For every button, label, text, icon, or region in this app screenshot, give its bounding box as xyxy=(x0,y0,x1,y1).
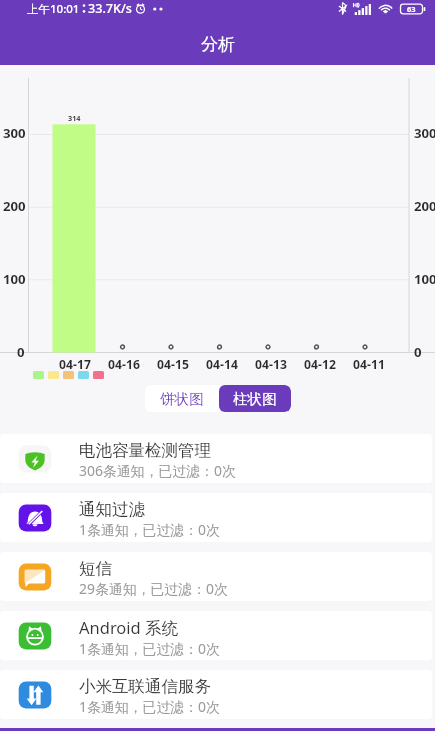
staticText: 电池容量检测管理 xyxy=(79,440,211,461)
staticText: 分析 xyxy=(201,34,235,55)
staticText: 饼状图 xyxy=(160,390,204,408)
staticText: 300 xyxy=(3,124,26,142)
button[interactable]: 柱状图 xyxy=(219,385,291,412)
staticText: 04-12 xyxy=(304,356,336,373)
button[interactable]: 分析 xyxy=(0,26,435,65)
staticText: 小米互联通信服务 xyxy=(79,676,211,697)
staticText: 04-15 xyxy=(157,356,189,373)
staticText: 通知过滤 xyxy=(79,499,145,520)
button[interactable]: 电池容量检测管理 xyxy=(0,434,432,483)
staticText: 300 xyxy=(414,124,435,142)
staticText: 100 xyxy=(414,270,435,288)
staticText: 63 xyxy=(407,4,416,14)
staticText: 04-13 xyxy=(255,356,287,373)
button[interactable]: 小米互联通信服务 xyxy=(0,670,432,719)
staticText: 短信 xyxy=(79,558,112,579)
staticText: 314 xyxy=(68,113,81,123)
staticText: 04-17 xyxy=(59,356,91,373)
button[interactable]: 短信 xyxy=(0,552,432,601)
staticText: 33.7K/s xyxy=(88,0,132,17)
staticText: 1条通知，已过滤：0次 xyxy=(79,697,220,716)
staticText: 0 xyxy=(414,343,422,361)
staticText: 柱状图 xyxy=(233,390,277,408)
staticText: 29条通知，已过滤：0次 xyxy=(79,579,228,598)
button[interactable]: 饼状图 xyxy=(145,385,219,412)
staticText: 04-11 xyxy=(353,356,385,373)
staticText: 1条通知，已过滤：0次 xyxy=(79,520,220,539)
staticText: 306条通知，已过滤：0次 xyxy=(79,461,236,480)
staticText: 100 xyxy=(3,270,26,288)
staticText: 04-14 xyxy=(206,356,238,373)
button[interactable]: Android 系统 xyxy=(0,611,432,660)
staticText: 200 xyxy=(414,197,435,215)
staticText: 1条通知，已过滤：0次 xyxy=(79,639,220,658)
staticText: 200 xyxy=(3,197,26,215)
staticText: 上午10:01 xyxy=(27,1,80,17)
staticText: 0 xyxy=(17,343,25,361)
staticText: Android 系统 xyxy=(79,616,179,639)
button[interactable]: 通知过滤 xyxy=(0,493,432,542)
staticText: 04-16 xyxy=(108,356,140,373)
